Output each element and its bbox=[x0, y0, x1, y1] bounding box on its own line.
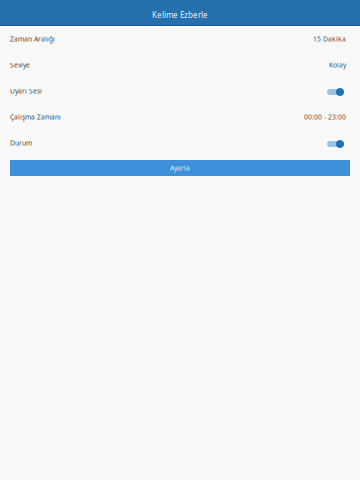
staticText: Kolay bbox=[329, 61, 346, 69]
button[interactable]: Çalışma Zamanı bbox=[0, 104, 360, 130]
staticText: Zaman Aralığı bbox=[10, 35, 55, 43]
button[interactable]: Zaman Aralığı bbox=[0, 26, 360, 52]
button[interactable]: Seviye bbox=[0, 52, 360, 78]
button[interactable]: Uyarı Sesi bbox=[0, 78, 360, 104]
staticText: Çalışma Zamanı bbox=[10, 113, 61, 121]
staticText: Ayarla bbox=[170, 164, 190, 172]
staticText: Durum bbox=[10, 139, 32, 147]
staticText: 00:00 - 23:00 bbox=[304, 113, 346, 121]
staticText: Uyarı Sesi bbox=[10, 87, 42, 95]
staticText: Seviye bbox=[10, 61, 30, 69]
staticText: Kelime Ezberle bbox=[152, 10, 208, 20]
button[interactable]: Durum bbox=[0, 130, 360, 156]
staticText: 15 Dakika bbox=[313, 35, 346, 43]
button[interactable]: Ayarla bbox=[10, 160, 350, 176]
